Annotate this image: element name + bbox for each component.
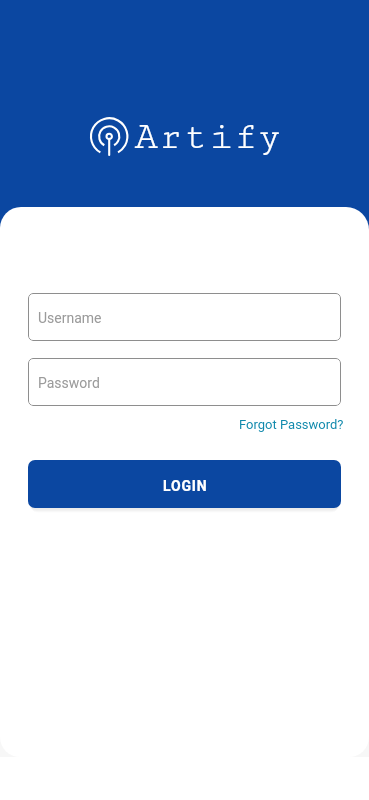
other: Artify logo xyxy=(90,118,129,156)
staticText: Password xyxy=(38,375,100,391)
button[interactable]: Forgot Password? xyxy=(239,417,344,432)
staticText: Artify xyxy=(134,115,283,159)
button[interactable]: Password xyxy=(28,358,341,406)
button[interactable]: LOGIN xyxy=(28,460,341,508)
staticText: Forgot Password? xyxy=(239,417,344,432)
button[interactable]: Username xyxy=(28,293,341,341)
staticText: LOGIN xyxy=(163,478,208,494)
staticText: Username xyxy=(38,310,102,326)
